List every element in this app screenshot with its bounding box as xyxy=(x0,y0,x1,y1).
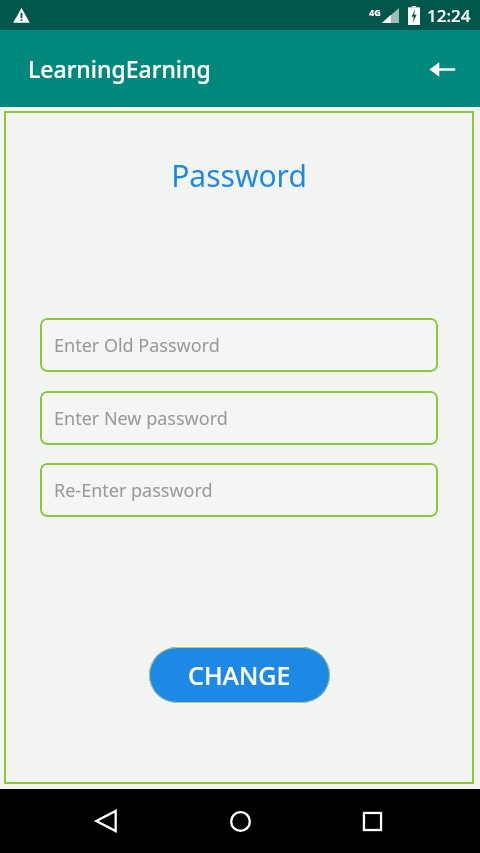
button[interactable]: Recent apps xyxy=(348,797,396,845)
button[interactable]: Home xyxy=(216,797,264,845)
staticText: 4G xyxy=(369,6,381,18)
staticText: CHANGE xyxy=(188,658,291,692)
staticText: 12:24 xyxy=(427,4,471,27)
staticText: Enter Old Password xyxy=(54,333,220,358)
staticText: Enter New password xyxy=(54,406,228,431)
staticText: LearningEarning xyxy=(28,53,211,84)
staticText: Password xyxy=(171,155,307,196)
button[interactable]: CHANGE xyxy=(149,647,330,703)
button[interactable]: Enter Old Password xyxy=(40,318,438,372)
button[interactable]: Back xyxy=(82,797,130,845)
staticText: Re-Enter password xyxy=(54,478,213,503)
button[interactable]: Back xyxy=(418,45,466,93)
button[interactable]: Re-Enter password xyxy=(40,463,438,517)
button[interactable]: Enter New password xyxy=(40,391,438,445)
